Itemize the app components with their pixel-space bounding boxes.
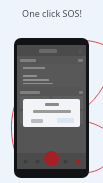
button[interactable] xyxy=(20,64,83,87)
button[interactable]: More options xyxy=(77,48,83,54)
button[interactable]: Home xyxy=(21,157,30,166)
button[interactable]: Messages xyxy=(33,157,42,166)
button[interactable]: Emergency contact xyxy=(20,96,50,109)
button[interactable]: Emergency contact xyxy=(52,96,83,109)
button[interactable]: Send SOS xyxy=(44,151,59,166)
button[interactable]: Emergency contact xyxy=(20,111,50,124)
button[interactable]: Add contact xyxy=(79,91,83,94)
button[interactable]: Emergency contact xyxy=(52,111,83,124)
button[interactable]: Settings xyxy=(73,157,82,166)
staticText: One click SOS! xyxy=(22,7,82,19)
button[interactable]: Map xyxy=(61,157,70,166)
button[interactable]: Edit SOS message xyxy=(78,59,83,62)
button[interactable]: Cancel xyxy=(31,119,43,123)
